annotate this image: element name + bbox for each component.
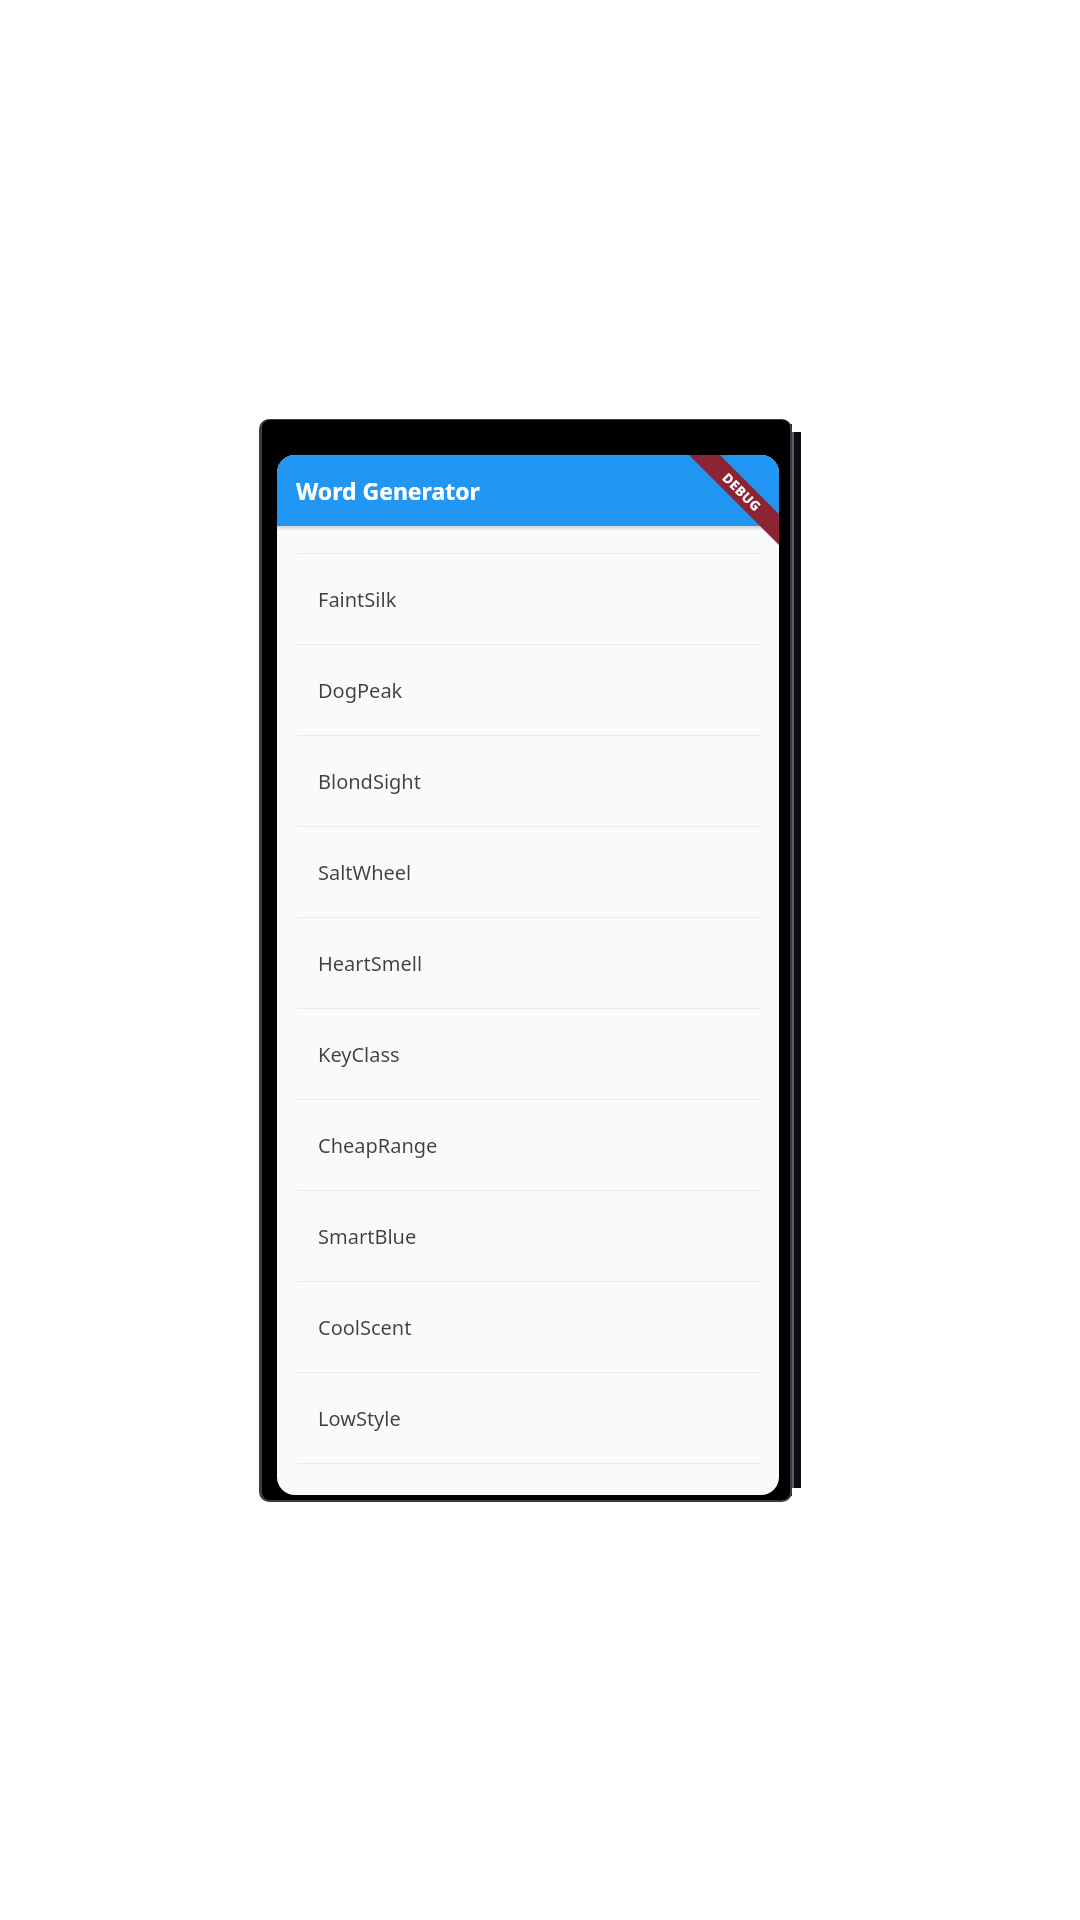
button[interactable]: FaintSilk [277,554,779,644]
button[interactable]: KeyClass [277,1009,779,1099]
button[interactable]: LowStyle [277,1373,779,1463]
staticText: FaintSilk [318,586,397,613]
staticText: BlondSight [318,768,421,795]
button[interactable]: SaltWheel [277,827,779,917]
staticText: SmartBlue [318,1223,417,1250]
button[interactable]: SmartBlue [277,1191,779,1281]
button[interactable]: CheapRange [277,1100,779,1190]
staticText: LowStyle [318,1405,401,1432]
button[interactable]: BlondSight [277,736,779,826]
staticText: HeartSmell [318,950,423,977]
other: Debug build banner [679,455,779,555]
button[interactable]: CoolScent [277,1282,779,1372]
staticText: CoolScent [318,1314,412,1341]
button[interactable]: DogPeak [277,645,779,735]
button[interactable]: HeartSmell [277,918,779,1008]
staticText: KeyClass [318,1041,400,1068]
staticText: SaltWheel [318,859,412,886]
staticText: Word Generator [296,475,480,506]
staticText: DEBUG [719,469,765,515]
staticText: CheapRange [318,1132,438,1159]
staticText: DogPeak [318,677,403,704]
